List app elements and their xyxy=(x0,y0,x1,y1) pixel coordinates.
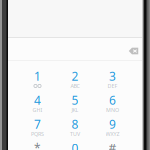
button[interactable]: * xyxy=(19,138,56,150)
button[interactable]: 5 xyxy=(56,90,94,114)
button[interactable]: # xyxy=(94,138,131,150)
button[interactable]: 6 xyxy=(94,90,131,114)
button[interactable]: 3 xyxy=(94,66,131,90)
button[interactable]: 0 xyxy=(56,138,94,150)
staticText: 1 xyxy=(34,68,41,84)
button[interactable]: 1 xyxy=(19,66,56,90)
staticText: # xyxy=(108,140,116,150)
staticText: JKL xyxy=(71,106,78,113)
staticText: 0 xyxy=(71,140,78,150)
staticText: DEF xyxy=(107,82,117,89)
staticText: GHI xyxy=(32,106,42,113)
staticText: * xyxy=(34,140,41,150)
button[interactable]: 4 xyxy=(19,90,56,114)
staticText: ABC xyxy=(70,82,79,89)
staticText: MNO xyxy=(106,106,119,113)
staticText: 6 xyxy=(109,92,116,108)
staticText: 9 xyxy=(109,116,116,132)
staticText: 2 xyxy=(71,68,78,84)
staticText: TUV xyxy=(70,130,80,137)
staticText: 8 xyxy=(71,116,78,132)
button[interactable]: Delete xyxy=(125,38,142,60)
staticText: WXYZ xyxy=(105,130,119,137)
button[interactable]: 7 xyxy=(19,114,56,138)
staticText: PQRS xyxy=(31,130,44,137)
staticText: 3 xyxy=(109,68,116,84)
staticText: 7 xyxy=(34,116,41,132)
staticText: 4 xyxy=(34,92,41,108)
button[interactable]: 9 xyxy=(94,114,131,138)
button[interactable]: 8 xyxy=(56,114,94,138)
staticText: 5 xyxy=(71,92,78,108)
button[interactable]: 2 xyxy=(56,66,94,90)
